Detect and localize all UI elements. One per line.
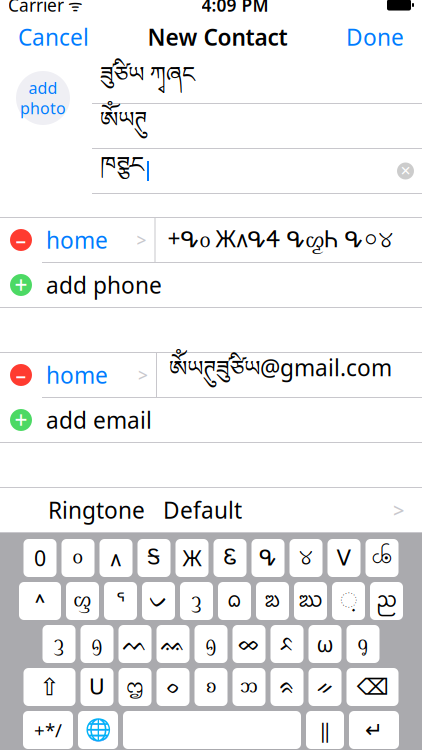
button[interactable]: ᨵ xyxy=(218,582,251,620)
staticText: 0 xyxy=(34,544,46,572)
button[interactable]: Shift xyxy=(23,668,75,706)
staticText: ᨥ xyxy=(298,584,323,618)
button[interactable]: space xyxy=(123,711,301,749)
button[interactable]: ༀཡཊུ xyxy=(92,104,422,148)
button[interactable]: Ꭶ xyxy=(137,539,170,577)
button[interactable]: ᨀ xyxy=(308,668,341,706)
button[interactable]: ᴧ xyxy=(99,539,132,577)
staticText: ᦈ xyxy=(206,675,216,699)
staticText: ᨆ xyxy=(149,591,168,611)
staticText: ᨵ xyxy=(227,584,242,618)
staticText: Ж xyxy=(182,544,201,572)
button[interactable]: ᨘ xyxy=(332,582,365,620)
staticText: – xyxy=(15,226,26,254)
button[interactable]: ᕐ xyxy=(104,582,137,620)
button[interactable]: ᨐ xyxy=(156,625,189,663)
staticText: Done xyxy=(346,22,404,52)
staticText: 🌐 xyxy=(84,718,111,742)
staticText: ᦗ xyxy=(126,675,143,699)
button[interactable]: Return xyxy=(349,711,399,749)
button[interactable]: ᦘ xyxy=(232,668,265,706)
button[interactable]: ᦞ xyxy=(61,539,94,577)
button[interactable]: 0 xyxy=(23,539,56,577)
staticText: > xyxy=(138,363,148,386)
staticText: ᨔ xyxy=(165,677,180,697)
staticText: ꧾ xyxy=(371,543,392,573)
button[interactable]: Delete xyxy=(346,668,398,706)
button[interactable]: ꧾ xyxy=(365,539,398,577)
staticText: ༀཡཊུཟུ༹ཅི༹ཡ@gmail.com xyxy=(169,344,392,406)
button[interactable]: Done xyxy=(336,15,414,59)
staticText: ⌫ xyxy=(356,674,388,700)
button[interactable]: Next keyboard xyxy=(78,711,118,749)
button[interactable]: ୪ xyxy=(289,539,322,577)
button[interactable]: Ꮛ xyxy=(213,539,246,577)
staticText: > xyxy=(136,228,146,251)
staticText: ᨬ xyxy=(376,584,397,618)
button[interactable]: ᨑ xyxy=(270,668,303,706)
staticText: Carrier xyxy=(8,0,64,16)
staticText: – xyxy=(15,361,26,389)
staticText: ᨘ xyxy=(340,591,357,611)
staticText: ‖ xyxy=(319,717,330,743)
staticText: ᨀ xyxy=(316,677,333,697)
button[interactable]: ᧁ xyxy=(346,625,379,663)
button[interactable]: ᨆ xyxy=(142,582,175,620)
button[interactable]: Ringtone xyxy=(0,488,422,532)
button[interactable]: ᦐ xyxy=(66,582,99,620)
button[interactable]: ω xyxy=(308,625,341,663)
staticText: ༀཡཊུ xyxy=(100,95,147,157)
button[interactable]: ᨖ xyxy=(232,625,265,663)
button[interactable]: – xyxy=(0,218,422,262)
staticText: add email xyxy=(46,405,152,435)
staticText: +ᕴᦞ ЖᴧᕴᏎ ᕴᦖᏂ ᕴ০୪ xyxy=(167,223,393,256)
staticText: ᨑ xyxy=(279,677,295,697)
staticText: ᦡ xyxy=(54,632,64,656)
button[interactable]: ᦇ xyxy=(194,625,227,663)
staticText: ᐯ xyxy=(336,546,351,570)
button[interactable]: ᑌ xyxy=(80,668,113,706)
button[interactable]: Ж xyxy=(175,539,208,577)
button[interactable]: – xyxy=(0,353,422,397)
button[interactable]: ᨓ xyxy=(118,625,151,663)
staticText: ᦘ xyxy=(240,675,258,699)
button[interactable]: ᦇ xyxy=(80,625,113,663)
staticText: ↵ xyxy=(365,718,383,742)
staticText: New Contact xyxy=(147,22,287,52)
button[interactable]: ᦡ xyxy=(180,582,213,620)
button[interactable]: ཟུ༹ཅི༹ཡ ཀྭཞང xyxy=(92,59,422,103)
staticText: ᨓ xyxy=(122,634,147,654)
button[interactable]: ᨅ xyxy=(270,625,303,663)
staticText: add xyxy=(28,77,57,98)
staticText: photo xyxy=(20,97,66,119)
button[interactable]: ᦡ xyxy=(42,625,75,663)
button[interactable]: ᦈ xyxy=(194,668,227,706)
button[interactable]: ᨰ xyxy=(256,582,289,620)
staticText: ᯤ xyxy=(64,0,83,16)
staticText: Default xyxy=(163,495,242,525)
button[interactable]: ᕴ xyxy=(251,539,284,577)
staticText: add phone xyxy=(46,270,162,300)
button[interactable]: Divider xyxy=(306,711,344,749)
button[interactable]: Symbols xyxy=(23,711,73,749)
staticText: ᕐ xyxy=(116,589,125,613)
staticText: +*/ xyxy=(34,718,62,742)
button[interactable]: ᨔ xyxy=(156,668,189,706)
button[interactable]: Cancel xyxy=(8,15,99,59)
button[interactable]: ᨥ xyxy=(294,582,327,620)
staticText: ཟུ༹ཅི༹ཡ ཀྭཞང xyxy=(100,50,195,112)
button[interactable]: + xyxy=(0,398,422,442)
staticText: Ꭶ xyxy=(147,548,161,568)
staticText: ᕴ xyxy=(259,546,277,570)
button[interactable]: More xyxy=(19,582,61,620)
button[interactable]: ᨬ xyxy=(370,582,403,620)
button[interactable]: ᦗ xyxy=(118,668,151,706)
staticText: Cancel xyxy=(18,22,89,52)
staticText: 4:09 PM xyxy=(201,0,268,16)
staticText: ^ xyxy=(35,589,45,612)
button[interactable]: ཁཊྩང xyxy=(92,149,422,193)
button[interactable]: + xyxy=(0,263,422,307)
button[interactable]: ᐯ xyxy=(327,539,360,577)
button[interactable]: add xyxy=(16,71,70,125)
staticText: ᦐ xyxy=(73,589,91,613)
